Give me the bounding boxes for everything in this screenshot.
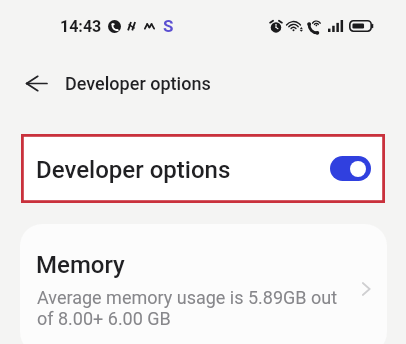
- button[interactable]: Developer options: [22, 135, 384, 202]
- staticText: 14:43: [60, 17, 102, 36]
- staticText: S: [163, 16, 174, 36]
- staticText: Developer options: [65, 73, 211, 94]
- staticText: Memory: [36, 251, 125, 279]
- button[interactable]: Developer options on: [330, 156, 371, 181]
- staticText: Developer options: [36, 156, 231, 184]
- button[interactable]: Memory: [20, 224, 387, 344]
- button[interactable]: Back: [19, 66, 53, 100]
- staticText: Average memory usage is 5.89GB out of 8.…: [37, 287, 338, 329]
